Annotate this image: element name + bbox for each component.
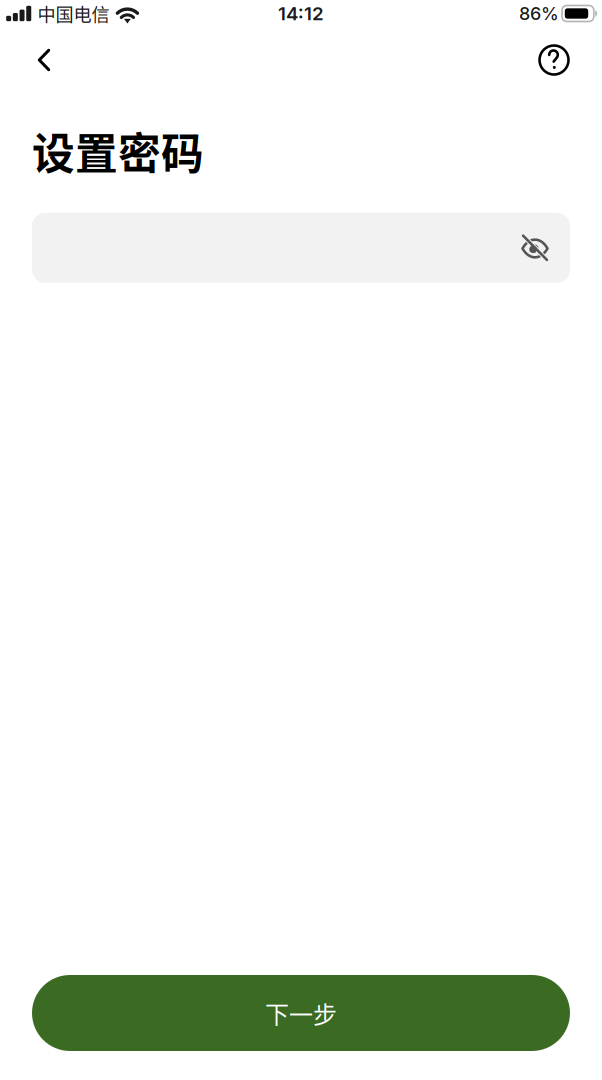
button[interactable]: Back: [18, 36, 70, 84]
staticText: 中国电信: [37, 0, 109, 27]
staticText: 14:12: [278, 2, 324, 25]
button[interactable]: Show password: [513, 226, 557, 270]
staticText: 下一步: [265, 996, 337, 1030]
button[interactable]: 下一步: [32, 975, 570, 1051]
staticText: 设置密码: [32, 120, 204, 182]
staticText: 86%: [519, 3, 559, 24]
button[interactable]: Help: [528, 36, 580, 84]
